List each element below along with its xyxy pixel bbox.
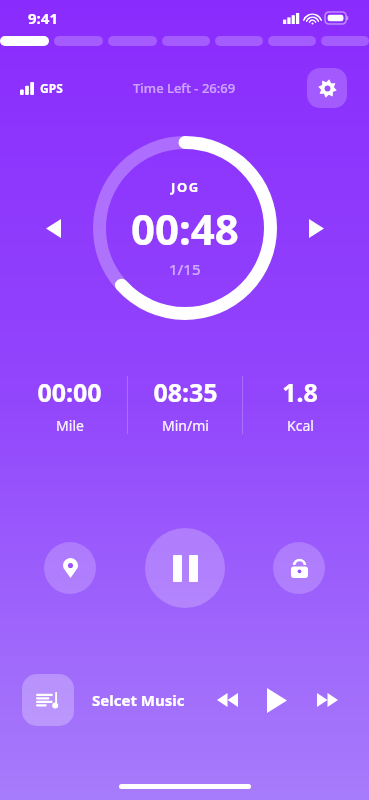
button[interactable]: Location <box>44 542 96 594</box>
staticText: 1.8 <box>282 375 318 409</box>
staticText: Mile <box>56 416 84 435</box>
button[interactable]: Next track <box>311 684 343 716</box>
button[interactable]: Music library <box>22 674 74 726</box>
staticText: 08:35 <box>153 375 218 409</box>
staticText: JOG <box>171 178 200 196</box>
button[interactable]: Next interval <box>299 211 333 245</box>
staticText: Min/mi <box>162 416 209 435</box>
button[interactable]: Selcet Music <box>92 690 185 710</box>
button[interactable]: GPS <box>20 80 63 96</box>
staticText: Time Left - 26:69 <box>133 79 236 97</box>
staticText: Kcal <box>287 416 314 435</box>
button[interactable]: Previous track <box>211 684 243 716</box>
staticText: 9:41 <box>28 8 58 28</box>
staticText: 1/15 <box>169 259 201 279</box>
button[interactable]: 00:00 <box>12 375 127 435</box>
button[interactable]: Previous interval <box>36 211 70 245</box>
staticText: 00:48 <box>131 200 239 257</box>
button[interactable]: Settings <box>307 68 347 108</box>
staticText: GPS <box>40 80 63 96</box>
button[interactable]: Lock <box>273 542 325 594</box>
button[interactable]: Pause <box>145 528 225 608</box>
button[interactable]: Play <box>257 680 297 720</box>
button[interactable]: 1.8 <box>243 375 357 435</box>
staticText: 00:00 <box>37 375 102 409</box>
button[interactable]: 08:35 <box>128 375 242 435</box>
